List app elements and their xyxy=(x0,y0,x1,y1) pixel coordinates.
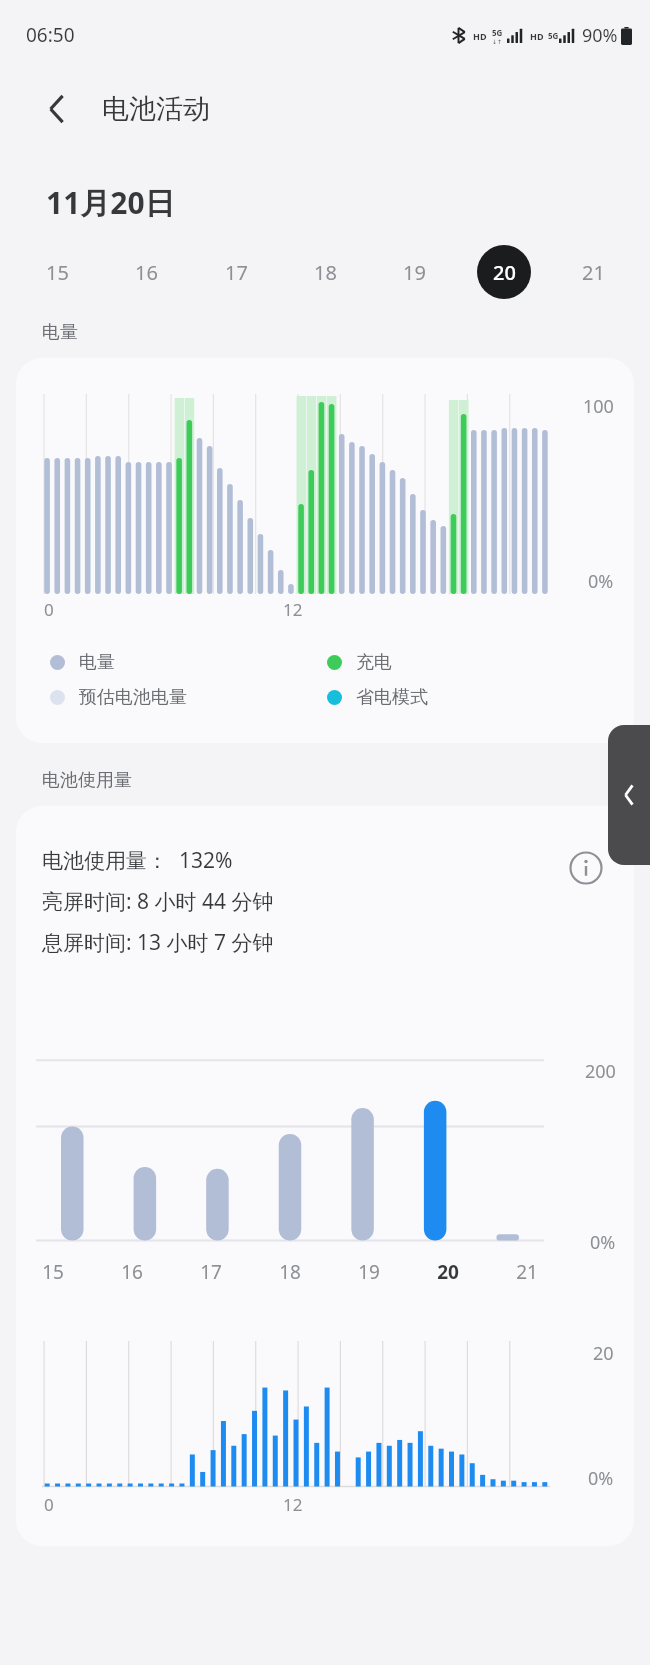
staticText: 亮屏时间: 8 小时 44 分钟 xyxy=(42,887,274,916)
button[interactable]: Info xyxy=(564,846,608,890)
staticText: 5G xyxy=(492,27,503,38)
staticText: 100 xyxy=(583,394,614,419)
button[interactable]: 100 xyxy=(16,358,634,743)
staticText: 15 xyxy=(46,259,69,286)
button[interactable]: 16 xyxy=(119,245,173,299)
button[interactable]: 21 xyxy=(566,245,620,299)
staticText: 20 xyxy=(493,259,516,286)
staticText: 20 xyxy=(593,1341,614,1366)
staticText: 0% xyxy=(588,1466,614,1491)
staticText: 0% xyxy=(590,1230,616,1255)
staticText: HD xyxy=(530,30,544,42)
staticText: HD xyxy=(473,30,487,42)
staticText: 12 xyxy=(283,598,303,621)
staticText: 17 xyxy=(200,1259,222,1285)
staticText: 电量 xyxy=(42,321,78,344)
staticText: 21 xyxy=(516,1259,538,1285)
button[interactable]: 18 xyxy=(298,245,352,299)
staticText: 0% xyxy=(588,569,614,594)
button[interactable]: 15 xyxy=(30,245,84,299)
staticText: 19 xyxy=(358,1259,380,1285)
staticText: ↓↑ xyxy=(492,38,503,45)
staticText: 19 xyxy=(403,259,426,286)
staticText: 06:50 xyxy=(26,22,75,48)
staticText: 200 xyxy=(585,1059,616,1084)
staticText: 0 xyxy=(44,1493,54,1516)
staticText: 电池使用量 xyxy=(42,769,132,792)
staticText: 电池使用量： 132% xyxy=(42,846,233,875)
staticText: 充电 xyxy=(356,651,392,674)
staticText: 电量 xyxy=(79,651,115,674)
staticText: 18 xyxy=(314,259,337,286)
button[interactable]: 19 xyxy=(387,245,441,299)
staticText: 5G xyxy=(548,30,559,41)
staticText: 16 xyxy=(121,1259,143,1285)
staticText: 21 xyxy=(582,259,605,286)
staticText: 息屏时间: 13 小时 7 分钟 xyxy=(42,928,274,957)
staticText: 18 xyxy=(279,1259,301,1285)
staticText: 17 xyxy=(225,259,248,286)
button[interactable]: 20 xyxy=(477,245,531,299)
staticText: 90% xyxy=(582,23,618,48)
staticText: 省电模式 xyxy=(356,686,428,709)
staticText: 15 xyxy=(42,1259,64,1285)
staticText: 0 xyxy=(44,598,54,621)
staticText: 11月20日 xyxy=(46,182,175,223)
button[interactable]: 17 xyxy=(209,245,263,299)
staticText: 12 xyxy=(283,1493,303,1516)
button[interactable]: Back xyxy=(34,86,80,132)
button[interactable]: 电池使用量： 132% xyxy=(16,806,634,1546)
staticText: 预估电池电量 xyxy=(79,686,187,709)
staticText: 电池活动 xyxy=(102,92,210,126)
staticText: 16 xyxy=(135,259,158,286)
button[interactable]: Open edge panel xyxy=(608,725,650,865)
staticText: 20 xyxy=(437,1259,459,1285)
